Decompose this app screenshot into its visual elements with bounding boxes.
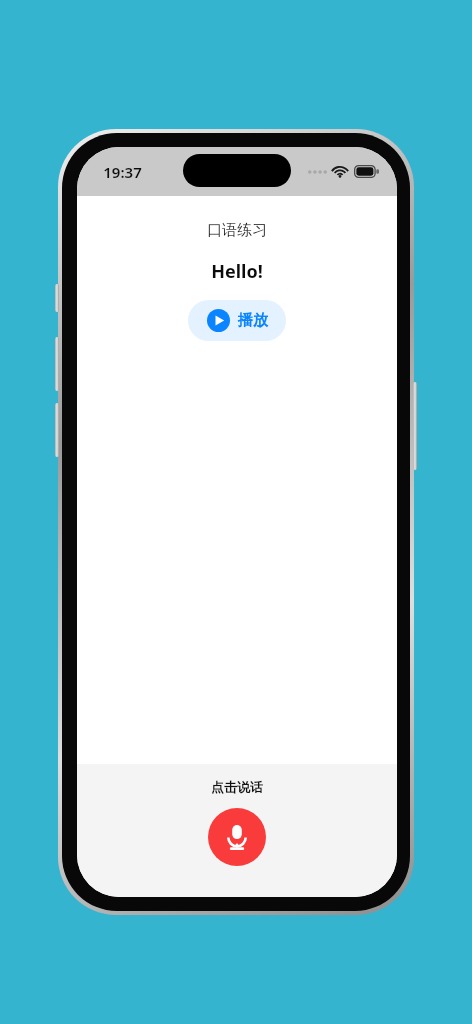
staticText: 点击说话	[211, 779, 263, 795]
staticText: 19:37	[103, 162, 142, 182]
staticText: Hello!	[211, 259, 263, 284]
staticText: 播放	[238, 311, 268, 330]
button[interactable]: 播放	[188, 300, 286, 341]
staticText: 口语练习	[207, 221, 267, 240]
button[interactable]: Tap to speak	[208, 808, 266, 866]
